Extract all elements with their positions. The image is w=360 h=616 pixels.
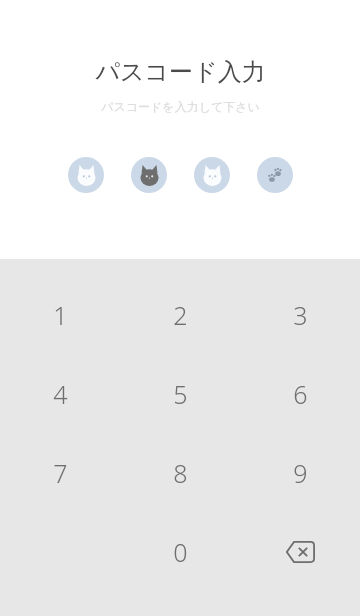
staticText: パスコードを入力して下さい xyxy=(101,99,260,114)
button[interactable]: 8 xyxy=(120,433,240,512)
button[interactable]: 9 xyxy=(240,433,360,512)
staticText: 2 xyxy=(173,298,188,332)
staticText: 7 xyxy=(53,456,68,490)
staticText: 3 xyxy=(293,298,308,332)
staticText: 0 xyxy=(173,535,188,569)
staticText: 8 xyxy=(173,456,188,490)
staticText: 4 xyxy=(53,377,68,411)
button[interactable]: 1 xyxy=(0,275,120,354)
staticText: 9 xyxy=(293,456,308,490)
staticText: 5 xyxy=(173,377,188,411)
button[interactable]: 4 xyxy=(0,354,120,433)
button[interactable]: 0 xyxy=(120,512,240,591)
staticText: パスコード入力 xyxy=(95,57,266,87)
staticText: 1 xyxy=(53,298,68,332)
button[interactable]: 7 xyxy=(0,433,120,512)
staticText: 6 xyxy=(293,377,308,411)
button[interactable]: 2 xyxy=(120,275,240,354)
button[interactable]: 3 xyxy=(240,275,360,354)
button[interactable]: 5 xyxy=(120,354,240,433)
button[interactable]: Delete xyxy=(240,512,360,591)
button[interactable]: 6 xyxy=(240,354,360,433)
